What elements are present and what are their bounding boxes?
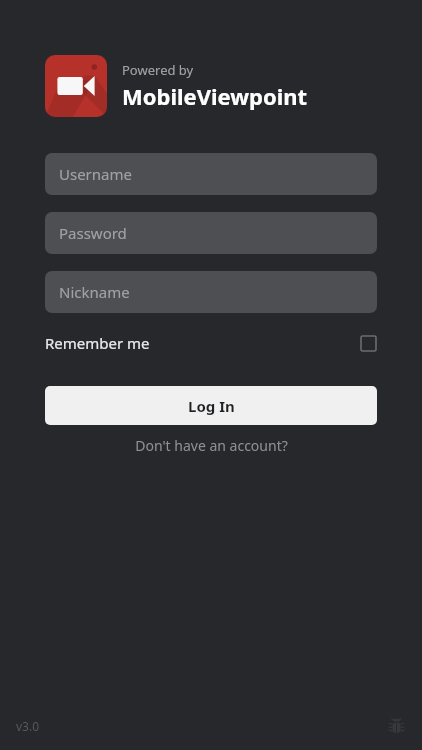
button[interactable]: Username: [45, 153, 377, 195]
staticText: Don't have an account?: [135, 436, 288, 455]
button[interactable]: Don't have an account?: [45, 431, 377, 459]
button[interactable]: Nickname: [45, 271, 377, 313]
button[interactable]: Debug: [380, 710, 412, 742]
staticText: Username: [59, 164, 132, 184]
staticText: Password: [59, 223, 127, 243]
staticText: Powered by: [122, 61, 194, 79]
button[interactable]: Password: [45, 212, 377, 254]
button[interactable]: Remember me: [45, 326, 377, 360]
staticText: Remember me: [45, 333, 150, 353]
staticText: v3.0: [16, 718, 40, 734]
staticText: MobileViewpoint: [122, 81, 308, 111]
staticText: Log In: [188, 396, 235, 416]
staticText: Nickname: [59, 282, 130, 302]
button[interactable]: Log In: [45, 386, 377, 425]
